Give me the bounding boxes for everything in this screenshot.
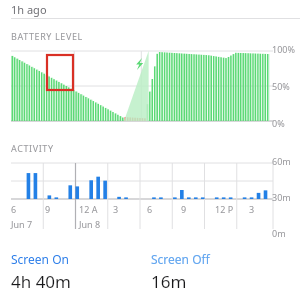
staticText: 3 [249, 203, 255, 215]
staticText: Screen On [11, 251, 69, 267]
staticText: 100% [272, 43, 295, 55]
staticText: 12 A [79, 203, 98, 215]
staticText: 6 [11, 203, 17, 215]
staticText: 9 [181, 203, 187, 215]
staticText: BATTERY LEVEL [11, 30, 83, 42]
staticText: 30m [272, 191, 291, 203]
staticText: 60m [272, 155, 291, 167]
staticText: 9 [45, 203, 51, 215]
staticText: ACTIVITY [11, 142, 54, 154]
staticText: 4h 40m [11, 270, 71, 293]
staticText: 6 [147, 203, 153, 215]
button[interactable]: 100% [0, 47, 300, 125]
staticText: 16m [151, 270, 187, 293]
button[interactable]: Screen On [11, 251, 151, 293]
staticText: 3 [113, 203, 119, 215]
button[interactable]: 1h ago [0, 0, 300, 18]
button[interactable]: Selected battery range [47, 55, 73, 90]
staticText: 1h ago [11, 2, 47, 17]
staticText: Screen Off [151, 251, 210, 267]
staticText: 0% [272, 117, 285, 129]
staticText: Jun 7 [11, 218, 33, 230]
staticText: Jun 8 [79, 218, 101, 230]
staticText: 12 P [215, 203, 234, 215]
button[interactable]: Screen Off [151, 251, 210, 293]
staticText: 0m [272, 227, 286, 239]
staticText: 50% [272, 80, 290, 92]
button[interactable]: 60m [0, 159, 300, 235]
